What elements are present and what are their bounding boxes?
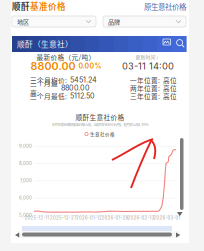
staticText: 2026-01-12 — [76, 215, 102, 221]
staticText: 顺酐 — [12, 0, 30, 12]
staticText: 7,000 — [20, 178, 32, 183]
staticText: 一年位置: — [130, 75, 160, 85]
staticText: 0.00% — [78, 62, 101, 70]
staticText: 更新时间 — [135, 53, 155, 60]
staticText: 高位 — [163, 83, 177, 93]
staticText: 生意社价格 — [90, 131, 115, 137]
staticText: 顺酐生意社价格 — [75, 112, 124, 122]
staticText: 本月生意社顺酐基准价格上涨，当前均价8800元/吨，较月初上涨1.99% — [51, 122, 148, 127]
staticText: 03-11 14:00 — [122, 60, 174, 72]
staticText: 8,000 — [19, 161, 32, 166]
staticText: 三年位置: — [130, 91, 160, 101]
staticText: 最新价格（元/吨） — [36, 52, 95, 62]
staticText: 三个月均价: — [30, 75, 67, 85]
button[interactable]: Chart image — [163, 39, 170, 45]
staticText: 6,000 — [19, 195, 32, 201]
staticText: 2025-12-27 — [50, 215, 76, 221]
staticText: 2025-12-11 — [24, 215, 49, 221]
staticText: 2026-02-13 — [127, 215, 154, 221]
staticText: 地区 — [17, 17, 29, 26]
button[interactable]: 原生意社价格 — [144, 1, 186, 12]
button[interactable]: 更新时间 — [135, 53, 160, 60]
button[interactable]: Search — [176, 39, 185, 48]
staticText: 5451.24 — [70, 76, 97, 84]
staticText: 5,000 — [19, 212, 32, 218]
staticText: 2026-03-01 — [153, 215, 180, 221]
staticText: 2026-01-28 — [101, 215, 128, 221]
button[interactable]: 地区 — [12, 16, 96, 27]
staticText: 品牌 — [108, 17, 120, 26]
staticText: 8800.00 — [30, 59, 75, 72]
staticText: 顺酐（生意社） — [17, 38, 73, 50]
staticText: 〉 — [156, 54, 160, 60]
staticText: 两年位置: — [130, 83, 160, 93]
staticText: 8800.00 — [61, 84, 90, 92]
staticText: 5112.50 — [70, 92, 95, 100]
staticText: 基准价格 — [30, 0, 66, 12]
staticText: 三个月最低: — [30, 91, 67, 101]
staticText: 原生意社价格 — [144, 1, 186, 12]
staticText: 三个月最高: — [30, 78, 58, 98]
staticText: 高位 — [163, 75, 177, 85]
button[interactable]: 品牌 — [103, 16, 186, 27]
staticText: 9,000 — [19, 143, 32, 149]
staticText: 高位 — [163, 91, 177, 101]
